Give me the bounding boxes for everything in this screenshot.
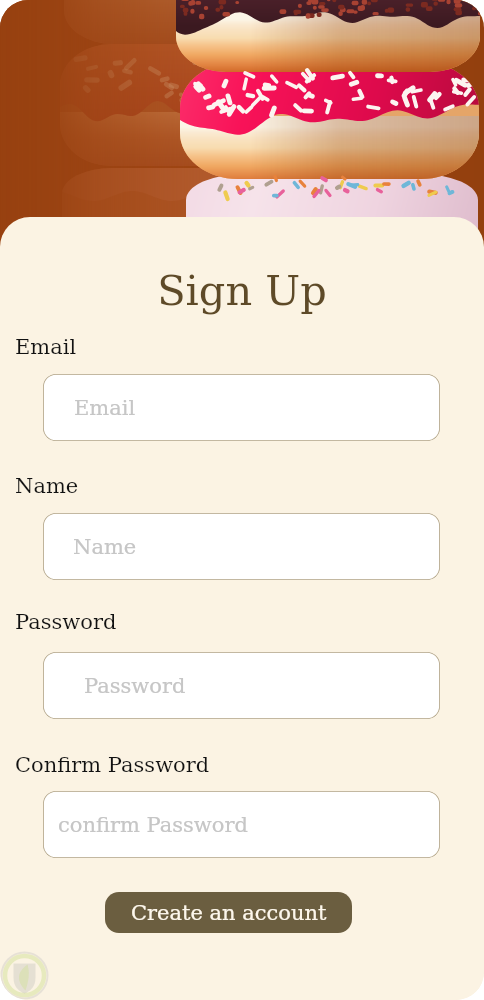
staticText: Password (15, 610, 117, 634)
staticText: Password (84, 674, 186, 698)
staticText: Name (73, 535, 137, 559)
button[interactable]: Create an account (105, 892, 352, 933)
button[interactable]: Password (43, 652, 440, 719)
staticText: Email (74, 396, 136, 420)
button[interactable]: Name (43, 513, 440, 580)
staticText: Email (15, 335, 77, 359)
other: Logo watermark (0, 0, 484, 1000)
staticText: confirm Password (58, 813, 248, 837)
staticText: Name (15, 474, 79, 498)
staticText: Create an account (131, 901, 327, 925)
button[interactable]: Email (43, 374, 440, 441)
staticText: Sign Up (0, 266, 484, 314)
button[interactable]: confirm Password (43, 791, 440, 858)
staticText: Confirm Password (15, 753, 210, 777)
